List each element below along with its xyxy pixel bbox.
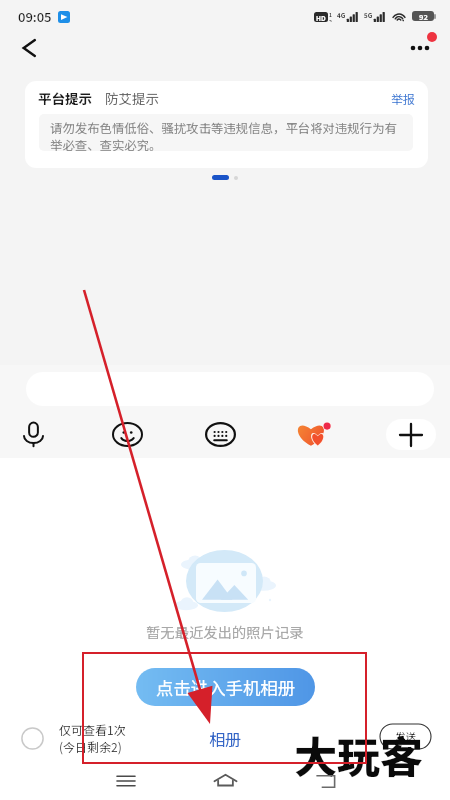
button[interactable]: Back bbox=[303, 762, 347, 800]
staticText: 防艾提示 bbox=[105, 88, 159, 108]
button[interactable]: Voice message bbox=[6, 410, 60, 458]
button[interactable]: Gifts bbox=[287, 410, 341, 458]
button[interactable]: 相册 bbox=[209, 727, 242, 750]
staticText: 请勿发布色情低俗、骚扰攻击等违规信息，平台将对违规行为有举必查、查实必究。 bbox=[50, 119, 403, 151]
button[interactable]: Recents bbox=[104, 762, 148, 800]
staticText: 相册 bbox=[209, 727, 242, 750]
staticText: HD bbox=[316, 13, 326, 22]
staticText: 暂无最近发出的照片记录 bbox=[146, 621, 304, 642]
button[interactable]: 点击进入手机相册 bbox=[136, 668, 315, 706]
staticText: 仅可查看1次 bbox=[59, 721, 126, 738]
button[interactable]: Home bbox=[203, 762, 247, 800]
staticText: 92 bbox=[419, 11, 428, 21]
staticText: (今日剩余2) bbox=[59, 738, 122, 755]
button[interactable]: 平台提示 bbox=[25, 81, 428, 168]
staticText: 大玩客 bbox=[294, 723, 423, 785]
button[interactable]: Emoji bbox=[100, 410, 154, 458]
staticText: 发送 bbox=[395, 729, 416, 744]
button[interactable]: Keyboard bbox=[193, 410, 247, 458]
staticText: 1 bbox=[329, 11, 332, 18]
staticText: 举报 bbox=[391, 90, 416, 107]
button[interactable]: More bbox=[384, 410, 438, 458]
staticText: 09:05 bbox=[18, 7, 52, 26]
staticText: 5G bbox=[364, 10, 373, 19]
staticText: 2 bbox=[329, 18, 332, 22]
button[interactable] bbox=[26, 372, 434, 406]
button[interactable]: 仅可查看1次 bbox=[21, 721, 126, 755]
staticText: 4G bbox=[337, 10, 346, 19]
button[interactable]: 发送 bbox=[380, 724, 431, 749]
staticText: 平台提示 bbox=[38, 88, 92, 108]
button[interactable]: Back bbox=[11, 30, 47, 66]
staticText: 点击进入手机相册 bbox=[156, 675, 296, 700]
button[interactable]: More options bbox=[404, 26, 444, 66]
